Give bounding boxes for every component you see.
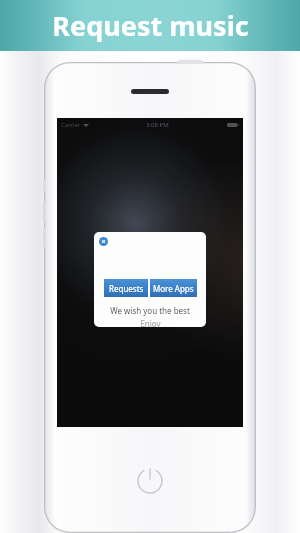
staticText: We wish you the best <box>110 305 190 316</box>
button[interactable]: Home <box>135 466 165 496</box>
staticText: Request music <box>52 7 249 44</box>
staticText: Carrier <box>61 121 81 129</box>
button[interactable]: Requests <box>104 279 148 297</box>
button[interactable]: Close <box>99 237 108 246</box>
staticText: Enjoy <box>140 318 161 327</box>
button[interactable]: More Apps <box>150 279 197 297</box>
staticText: 3:08 PM <box>146 121 169 129</box>
staticText: Requests <box>109 283 144 294</box>
staticText: More Apps <box>153 283 194 294</box>
